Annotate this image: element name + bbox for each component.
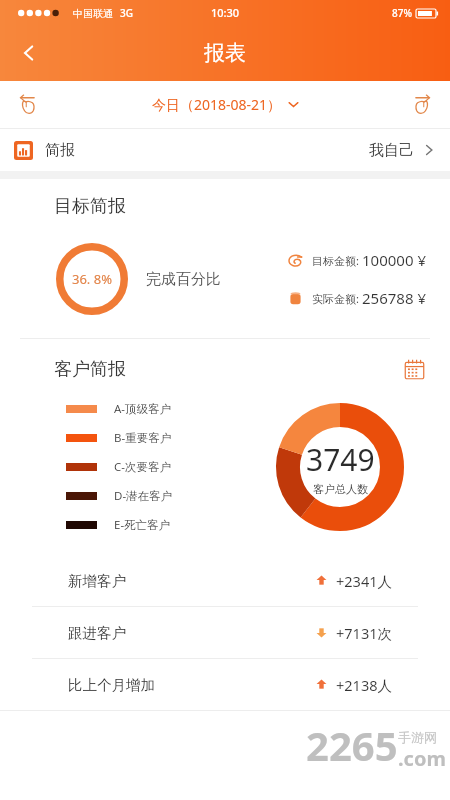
staticText: 3749 (306, 439, 375, 480)
staticText: 手游网 (398, 729, 437, 745)
staticText: 我自己 (369, 141, 414, 160)
staticText: 客户简报 (54, 358, 126, 381)
staticText: 简报 (45, 141, 75, 160)
button[interactable]: 今日（2018-08-21） (144, 89, 307, 120)
staticText: D-潜在客户 (114, 488, 173, 504)
staticText: 256788 ¥ (362, 288, 426, 308)
staticText: 10:30 (211, 5, 240, 20)
staticText: +2138人 (336, 675, 392, 695)
staticText: 客户总人数 (313, 482, 368, 496)
staticText: 比上个月增加 (68, 676, 155, 694)
staticText: 完成百分比 (146, 270, 221, 289)
button[interactable]: 比上个月增加 (0, 659, 450, 710)
staticText: 目标金额: (312, 253, 362, 268)
staticText: 3G (120, 6, 133, 20)
staticText: 36. 8% (72, 270, 112, 288)
staticText: 实际金额: (312, 291, 362, 306)
staticText: +2341人 (336, 571, 392, 591)
staticText: E-死亡客户 (114, 517, 171, 533)
staticText: 2265 (306, 718, 398, 772)
staticText: 跟进客户 (68, 624, 126, 642)
staticText: 87% (392, 6, 412, 20)
button[interactable]: 新增客户 (0, 555, 450, 606)
button[interactable]: Previous day (8, 85, 48, 125)
staticText: 报表 (204, 40, 246, 66)
button[interactable]: 简报 (0, 129, 450, 171)
staticText: 今日（2018-08-21） (152, 95, 282, 114)
button[interactable]: Back (6, 30, 52, 76)
button[interactable]: Calendar (398, 353, 430, 385)
staticText: 目标简报 (54, 195, 126, 218)
staticText: 中国联通 (73, 7, 113, 20)
staticText: B-重要客户 (114, 430, 172, 446)
staticText: 100000 ¥ (362, 250, 426, 270)
button[interactable]: 跟进客户 (0, 607, 450, 658)
staticText: 新增客户 (68, 572, 126, 590)
staticText: C-次要客户 (114, 459, 171, 475)
button[interactable]: Next day (402, 85, 442, 125)
staticText: A-顶级客户 (114, 401, 172, 417)
staticText: .com (398, 745, 446, 772)
staticText: +7131次 (336, 623, 392, 643)
